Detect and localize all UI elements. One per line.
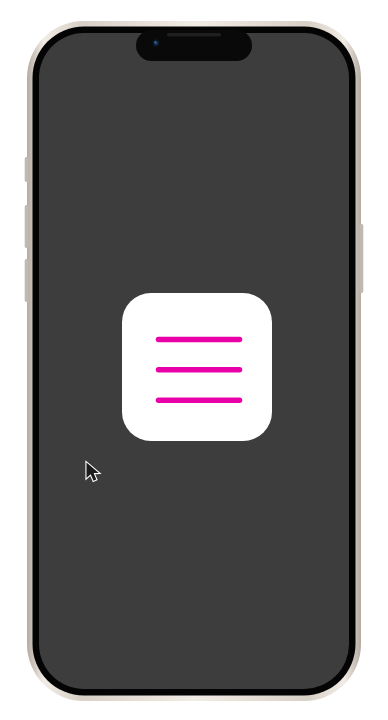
button[interactable]: Open navigation menu — [122, 293, 272, 441]
